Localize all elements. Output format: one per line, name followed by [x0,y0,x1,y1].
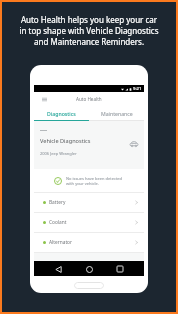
staticText: Battery [49,199,66,206]
button[interactable]: Diagnostics [34,106,89,120]
staticText: Diagnostics [47,110,76,117]
button[interactable]: Back [51,262,65,276]
button[interactable]: Battery [34,193,144,212]
button[interactable]: Coolant [34,213,144,232]
staticText: 9:21 [133,86,142,92]
staticText: Alternator [49,239,72,246]
staticText: No issues have been detected with your v… [66,176,123,186]
button[interactable]: Home [82,262,96,276]
staticText: 2006 Jeep Wrangler [40,151,77,156]
button[interactable]: Maintenance [89,106,144,120]
button[interactable]: Menu [42,97,47,102]
staticText: Maintenance [101,110,133,117]
staticText: Vehicle Diagnostics [40,137,91,145]
staticText: Coolant [49,219,67,226]
button[interactable]: Alternator [34,233,144,252]
staticText: Auto Health [76,96,102,102]
staticText: Auto Health helps you keep your car in t… [2,14,176,47]
button[interactable]: Recents [113,262,127,276]
